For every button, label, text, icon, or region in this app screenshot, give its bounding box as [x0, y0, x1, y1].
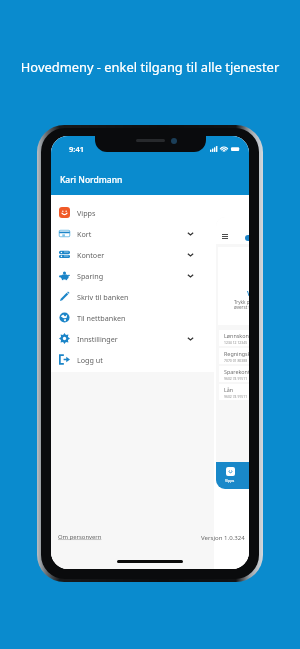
- staticText: Kari Nordmann: [60, 174, 123, 186]
- staticText: 9602 74 91511: [224, 376, 248, 381]
- staticText: øverst til venstre: [234, 304, 249, 310]
- staticText: Vipps: [77, 208, 96, 218]
- button[interactable]: Sparekonto: [219, 366, 249, 382]
- button[interactable]: Logg ut: [51, 349, 215, 370]
- button[interactable]: Skriv til banken: [51, 286, 215, 307]
- staticText: Lønnskonto: [224, 332, 249, 339]
- staticText: Skriv til banken: [77, 292, 129, 302]
- staticText: Hovedmeny - enkel tilgang til alle tjene…: [0, 58, 300, 76]
- staticText: Regningskonto: [224, 350, 249, 357]
- button[interactable]: Regningskonto: [219, 348, 249, 364]
- button[interactable]: Lønnskonto: [219, 330, 249, 346]
- staticText: Kontoer: [77, 250, 105, 260]
- button[interactable]: Innstillinger: [51, 328, 215, 349]
- staticText: Innstillinger: [77, 334, 118, 344]
- staticText: Sparing: [77, 271, 104, 281]
- staticText: Sparekonto: [224, 368, 249, 375]
- button[interactable]: Om personvern: [58, 533, 102, 541]
- button[interactable]: Vipps: [51, 202, 215, 223]
- staticText: Lån: [224, 386, 234, 393]
- staticText: Versjon 1.0.324: [201, 533, 245, 541]
- button[interactable]: Kort: [51, 223, 215, 244]
- button[interactable]: Sparing: [51, 265, 215, 286]
- staticText: Velkommen!: [247, 289, 249, 298]
- button[interactable]: Lån: [219, 384, 249, 400]
- staticText: Logg ut: [77, 355, 103, 365]
- staticText: 9602 74 91511: [224, 394, 248, 399]
- staticText: 9:41: [69, 144, 85, 154]
- staticText: 7070 01 80388: [224, 358, 248, 363]
- staticText: 1234 12 12345: [224, 340, 248, 345]
- staticText: Trykk på en konto: [234, 299, 249, 305]
- staticText: Kort: [77, 229, 92, 239]
- staticText: Vipps: [225, 478, 235, 483]
- staticText: Til nettbanken: [77, 313, 126, 323]
- button[interactable]: Kontoer: [51, 244, 215, 265]
- button[interactable]: Til nettbanken: [51, 307, 215, 328]
